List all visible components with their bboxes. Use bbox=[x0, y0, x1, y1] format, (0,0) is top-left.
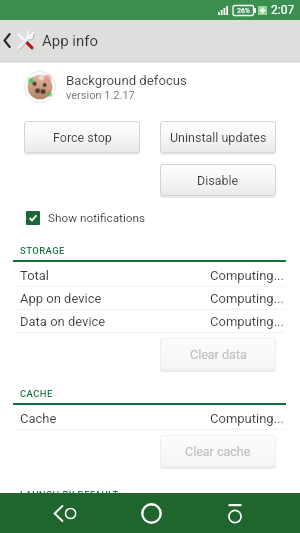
staticText: LAUNCH BY DEFAULT bbox=[20, 489, 119, 500]
staticText: Cache bbox=[20, 411, 57, 426]
button[interactable]: Show notifications bbox=[26, 211, 300, 225]
button[interactable]: Back bbox=[24, 493, 104, 533]
button[interactable]: Clear cache bbox=[160, 435, 276, 467]
staticText: Computing... bbox=[210, 314, 284, 329]
button[interactable]: Data on device bbox=[0, 310, 300, 333]
button[interactable]: Home bbox=[111, 493, 191, 533]
staticText: STORAGE bbox=[20, 245, 65, 256]
staticText: CACHE bbox=[20, 388, 53, 399]
button[interactable]: Force stop bbox=[24, 121, 140, 153]
staticText: Uninstall updates bbox=[170, 130, 267, 145]
button[interactable]: Total bbox=[0, 264, 300, 287]
staticText: 26% bbox=[237, 7, 250, 15]
button[interactable]: Cache bbox=[0, 407, 300, 430]
button[interactable]: Uninstall updates bbox=[160, 121, 276, 153]
staticText: Total bbox=[20, 268, 50, 283]
staticText: Clear data bbox=[190, 347, 247, 362]
button[interactable]: Recent apps bbox=[195, 493, 275, 533]
staticText: Computing... bbox=[210, 291, 284, 306]
button[interactable]: Navigate up bbox=[0, 20, 14, 61]
staticText: Computing... bbox=[210, 268, 284, 283]
staticText: Clear cache bbox=[185, 444, 251, 459]
staticText: Force stop bbox=[53, 130, 112, 145]
staticText: App on device bbox=[20, 291, 102, 306]
staticText: Background defocus bbox=[66, 73, 187, 88]
staticText: Show notifications bbox=[48, 211, 146, 225]
staticText: App info bbox=[42, 32, 99, 50]
staticText: Disable bbox=[197, 173, 239, 188]
staticText: version 1.2.17 bbox=[66, 89, 135, 102]
button[interactable]: Disable bbox=[160, 164, 276, 196]
staticText: 2:07 bbox=[271, 3, 295, 17]
staticText: Computing... bbox=[210, 411, 284, 426]
staticText: Data on device bbox=[20, 314, 106, 329]
button[interactable]: App on device bbox=[0, 287, 300, 310]
button[interactable]: Clear data bbox=[160, 338, 276, 370]
